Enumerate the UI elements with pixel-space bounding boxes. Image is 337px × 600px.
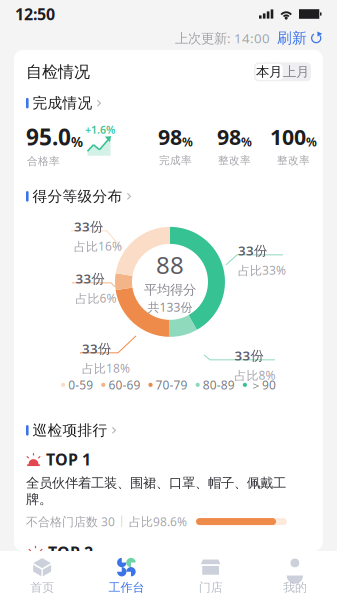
staticText: 我的: [283, 580, 307, 595]
staticText: 0-59: [68, 377, 93, 393]
staticText: 工作台: [108, 580, 144, 595]
staticText: 完成率: [159, 154, 192, 167]
staticText: 88: [156, 249, 184, 281]
staticText: 100: [270, 122, 306, 151]
staticText: 占比98.6%: [129, 514, 187, 529]
staticText: %: [241, 134, 252, 150]
staticText: 不合格门店数 30: [26, 514, 115, 529]
staticText: 本月: [256, 64, 282, 80]
staticText: 98: [158, 122, 182, 151]
staticText: +1.6%: [85, 123, 115, 137]
staticText: 占比18%: [82, 360, 130, 376]
staticText: 门店: [199, 580, 223, 595]
staticText: 刷新: [277, 29, 307, 47]
button[interactable]: 工作台: [84, 551, 168, 600]
staticText: 占比6%: [75, 290, 116, 306]
staticText: 70-79: [156, 377, 188, 393]
staticText: 98: [217, 122, 241, 151]
button[interactable]: 得分等级分布: [26, 188, 311, 205]
staticText: 巡检项排行: [33, 421, 108, 439]
staticText: 上月: [283, 64, 309, 80]
staticText: %: [182, 134, 193, 150]
staticText: 95.0: [26, 122, 71, 152]
staticText: 丨: [116, 514, 128, 529]
staticText: 得分等级分布: [33, 187, 123, 205]
button[interactable]: 巡检项排行: [26, 422, 311, 439]
staticText: TOP 1: [46, 449, 91, 470]
staticText: 完成情况: [33, 94, 93, 112]
staticText: ＞90: [250, 377, 276, 393]
staticText: 60-69: [108, 377, 140, 393]
staticText: 整改率: [277, 154, 310, 167]
staticText: %: [71, 133, 83, 151]
button[interactable]: 刷新: [270, 29, 323, 47]
button[interactable]: 门店: [168, 551, 253, 600]
button[interactable]: 完成情况: [26, 95, 311, 112]
staticText: 共133份: [147, 299, 192, 315]
staticText: 自检情况: [26, 62, 90, 82]
staticText: 33份: [82, 339, 111, 357]
staticText: 80-89: [203, 377, 235, 393]
staticText: 平均得分: [144, 282, 196, 298]
staticText: 占比8%: [234, 367, 275, 383]
staticText: 合格率: [27, 155, 60, 168]
staticText: 33份: [75, 269, 104, 287]
staticText: TOP 2: [48, 541, 93, 563]
staticText: %: [306, 134, 317, 150]
staticText: 首页: [30, 580, 54, 595]
staticText: 整改率: [218, 154, 251, 167]
staticText: 12:50: [15, 3, 55, 25]
staticText: 33份: [234, 346, 263, 364]
staticText: 全员伙伴着工装、围裙、口罩、帽子、佩戴工牌。: [26, 475, 286, 508]
staticText: 上次更新: 14:00: [175, 29, 270, 47]
button[interactable]: 我的: [253, 551, 337, 600]
staticText: 占比33%: [238, 262, 286, 278]
button[interactable]: 首页: [0, 551, 84, 600]
button[interactable]: 上月: [282, 64, 309, 80]
staticText: 33份: [238, 241, 267, 259]
button[interactable]: 本月: [255, 64, 282, 80]
staticText: 占比16%: [74, 238, 122, 254]
staticText: 33份: [74, 217, 103, 235]
